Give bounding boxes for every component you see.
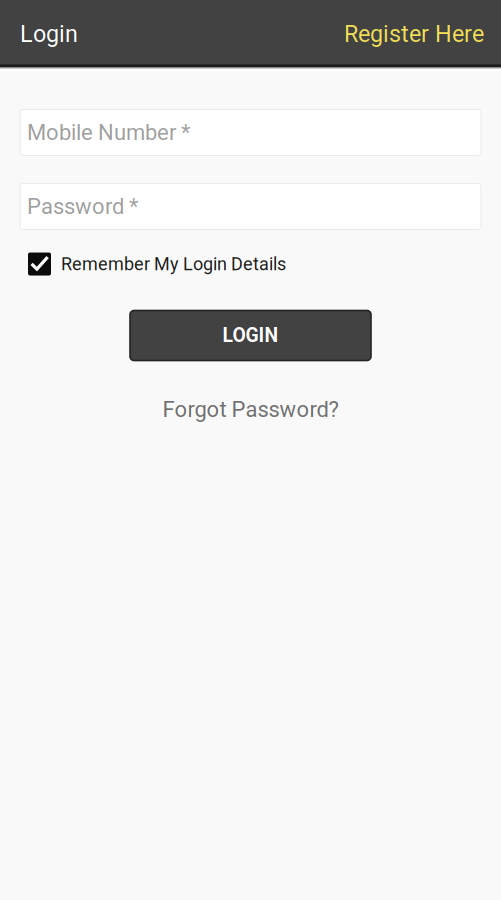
button[interactable]: Remember My Login Details <box>28 252 308 275</box>
staticText: Forgot Password? <box>162 397 338 422</box>
staticText: Mobile Number * <box>27 120 190 145</box>
button[interactable]: LOGIN <box>130 310 371 360</box>
staticText: Login <box>20 20 78 48</box>
button[interactable]: Forgot Password? <box>162 395 338 423</box>
button[interactable]: Password * <box>20 183 481 229</box>
button[interactable]: Mobile Number * <box>20 109 481 155</box>
staticText: LOGIN <box>222 324 278 347</box>
staticText: Remember My Login Details <box>61 253 286 275</box>
staticText: Password * <box>27 194 138 219</box>
button[interactable]: Register Here <box>344 20 484 48</box>
staticText: Register Here <box>344 20 484 48</box>
